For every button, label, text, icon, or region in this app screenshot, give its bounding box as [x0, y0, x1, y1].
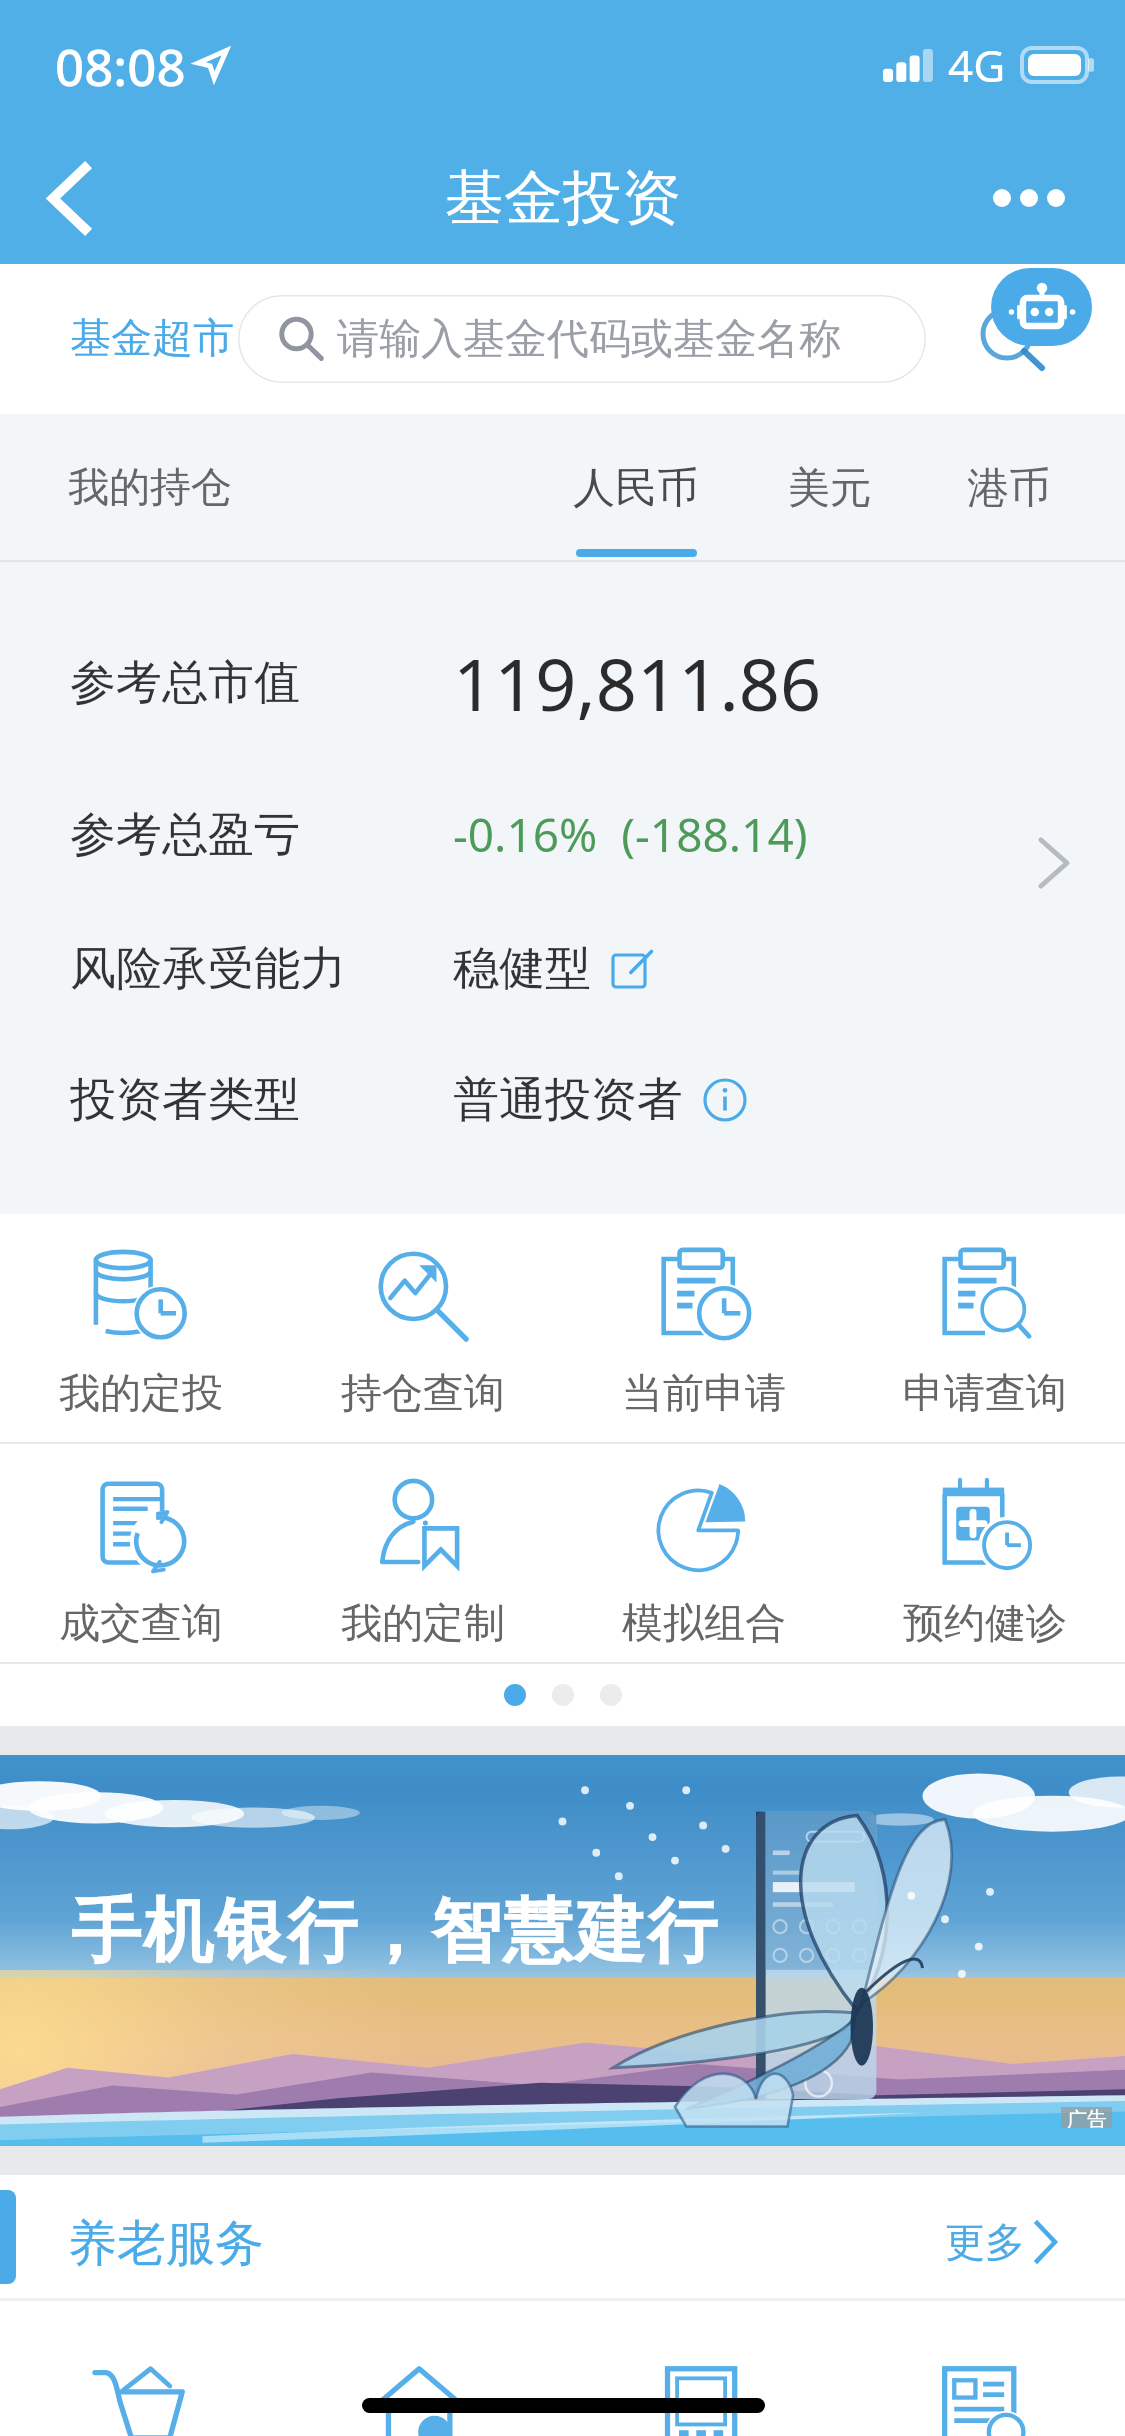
button[interactable]: 申请查询 [844, 1214, 1125, 1442]
staticText: 参考总市值 [70, 654, 453, 712]
staticText: 08:08 [55, 31, 186, 100]
staticText: 投资者类型 [70, 1071, 453, 1129]
button[interactable]: 我的定制 [282, 1444, 563, 1662]
staticText: 广告 [1067, 2107, 1107, 2128]
staticText: 人民币 [573, 462, 699, 515]
staticText: 我的定投 [59, 1368, 223, 1420]
staticText: 我的持仓 [68, 462, 232, 514]
staticText: 我的定制 [341, 1598, 505, 1650]
staticText: 请输入基金代码或基金名称 [337, 313, 841, 366]
button[interactable]: 参考总市值 [0, 562, 1125, 1214]
staticText: 成交查询 [59, 1598, 223, 1650]
button[interactable]: Elder service 1 [0, 2363, 282, 2436]
button[interactable]: 成交查询 [0, 1444, 282, 1662]
button[interactable]: Back [14, 143, 124, 253]
button[interactable]: 当前申请 [563, 1214, 844, 1442]
staticText: 更多 [945, 2217, 1025, 2267]
button[interactable]: 更多 [945, 2217, 1055, 2267]
button[interactable]: 请输入基金代码或基金名称 [238, 295, 926, 383]
staticText: 美元 [788, 462, 872, 515]
button[interactable]: 基金超市 [70, 313, 234, 365]
button[interactable]: AI assistant [976, 268, 1125, 378]
button[interactable]: Elder service 3 [563, 2363, 844, 2436]
button[interactable]: 人民币 [516, 414, 756, 562]
staticText: 基金投资 [445, 161, 681, 235]
button[interactable]: More options [977, 146, 1081, 250]
button[interactable]: 手机银行，智慧建行 [0, 1755, 1125, 2146]
button[interactable]: 持仓查询 [282, 1214, 563, 1442]
staticText: -0.16% (-188.14) [453, 803, 808, 866]
button[interactable]: 美元 [750, 414, 910, 562]
staticText: 预约健诊 [903, 1598, 1067, 1650]
button[interactable]: 模拟组合 [563, 1444, 844, 1662]
staticText: 普通投资者 [453, 1071, 683, 1129]
staticText: 手机银行，智慧建行 [70, 1888, 718, 1976]
staticText: 基金超市 [70, 313, 234, 365]
button[interactable]: 预约健诊 [844, 1444, 1125, 1662]
staticText: 4G [948, 35, 1006, 95]
staticText: 申请查询 [903, 1368, 1067, 1420]
button[interactable]: Elder service 2 [282, 2363, 563, 2436]
staticText: 持仓查询 [341, 1368, 505, 1420]
staticText: 当前申请 [622, 1368, 786, 1420]
staticText: 稳健型 [453, 940, 591, 998]
staticText: 119,811.86 [453, 634, 822, 732]
button[interactable]: 养老服务 [0, 2175, 1125, 2298]
button[interactable]: Elder service 4 [844, 2363, 1125, 2436]
button[interactable]: 我的定投 [0, 1214, 282, 1442]
staticText: 风险承受能力 [70, 940, 453, 998]
staticText: 养老服务 [68, 2213, 264, 2275]
staticText: 港币 [967, 462, 1051, 515]
staticText: 参考总盈亏 [70, 806, 453, 864]
staticText: 模拟组合 [622, 1598, 786, 1650]
button[interactable]: 港币 [929, 414, 1089, 562]
